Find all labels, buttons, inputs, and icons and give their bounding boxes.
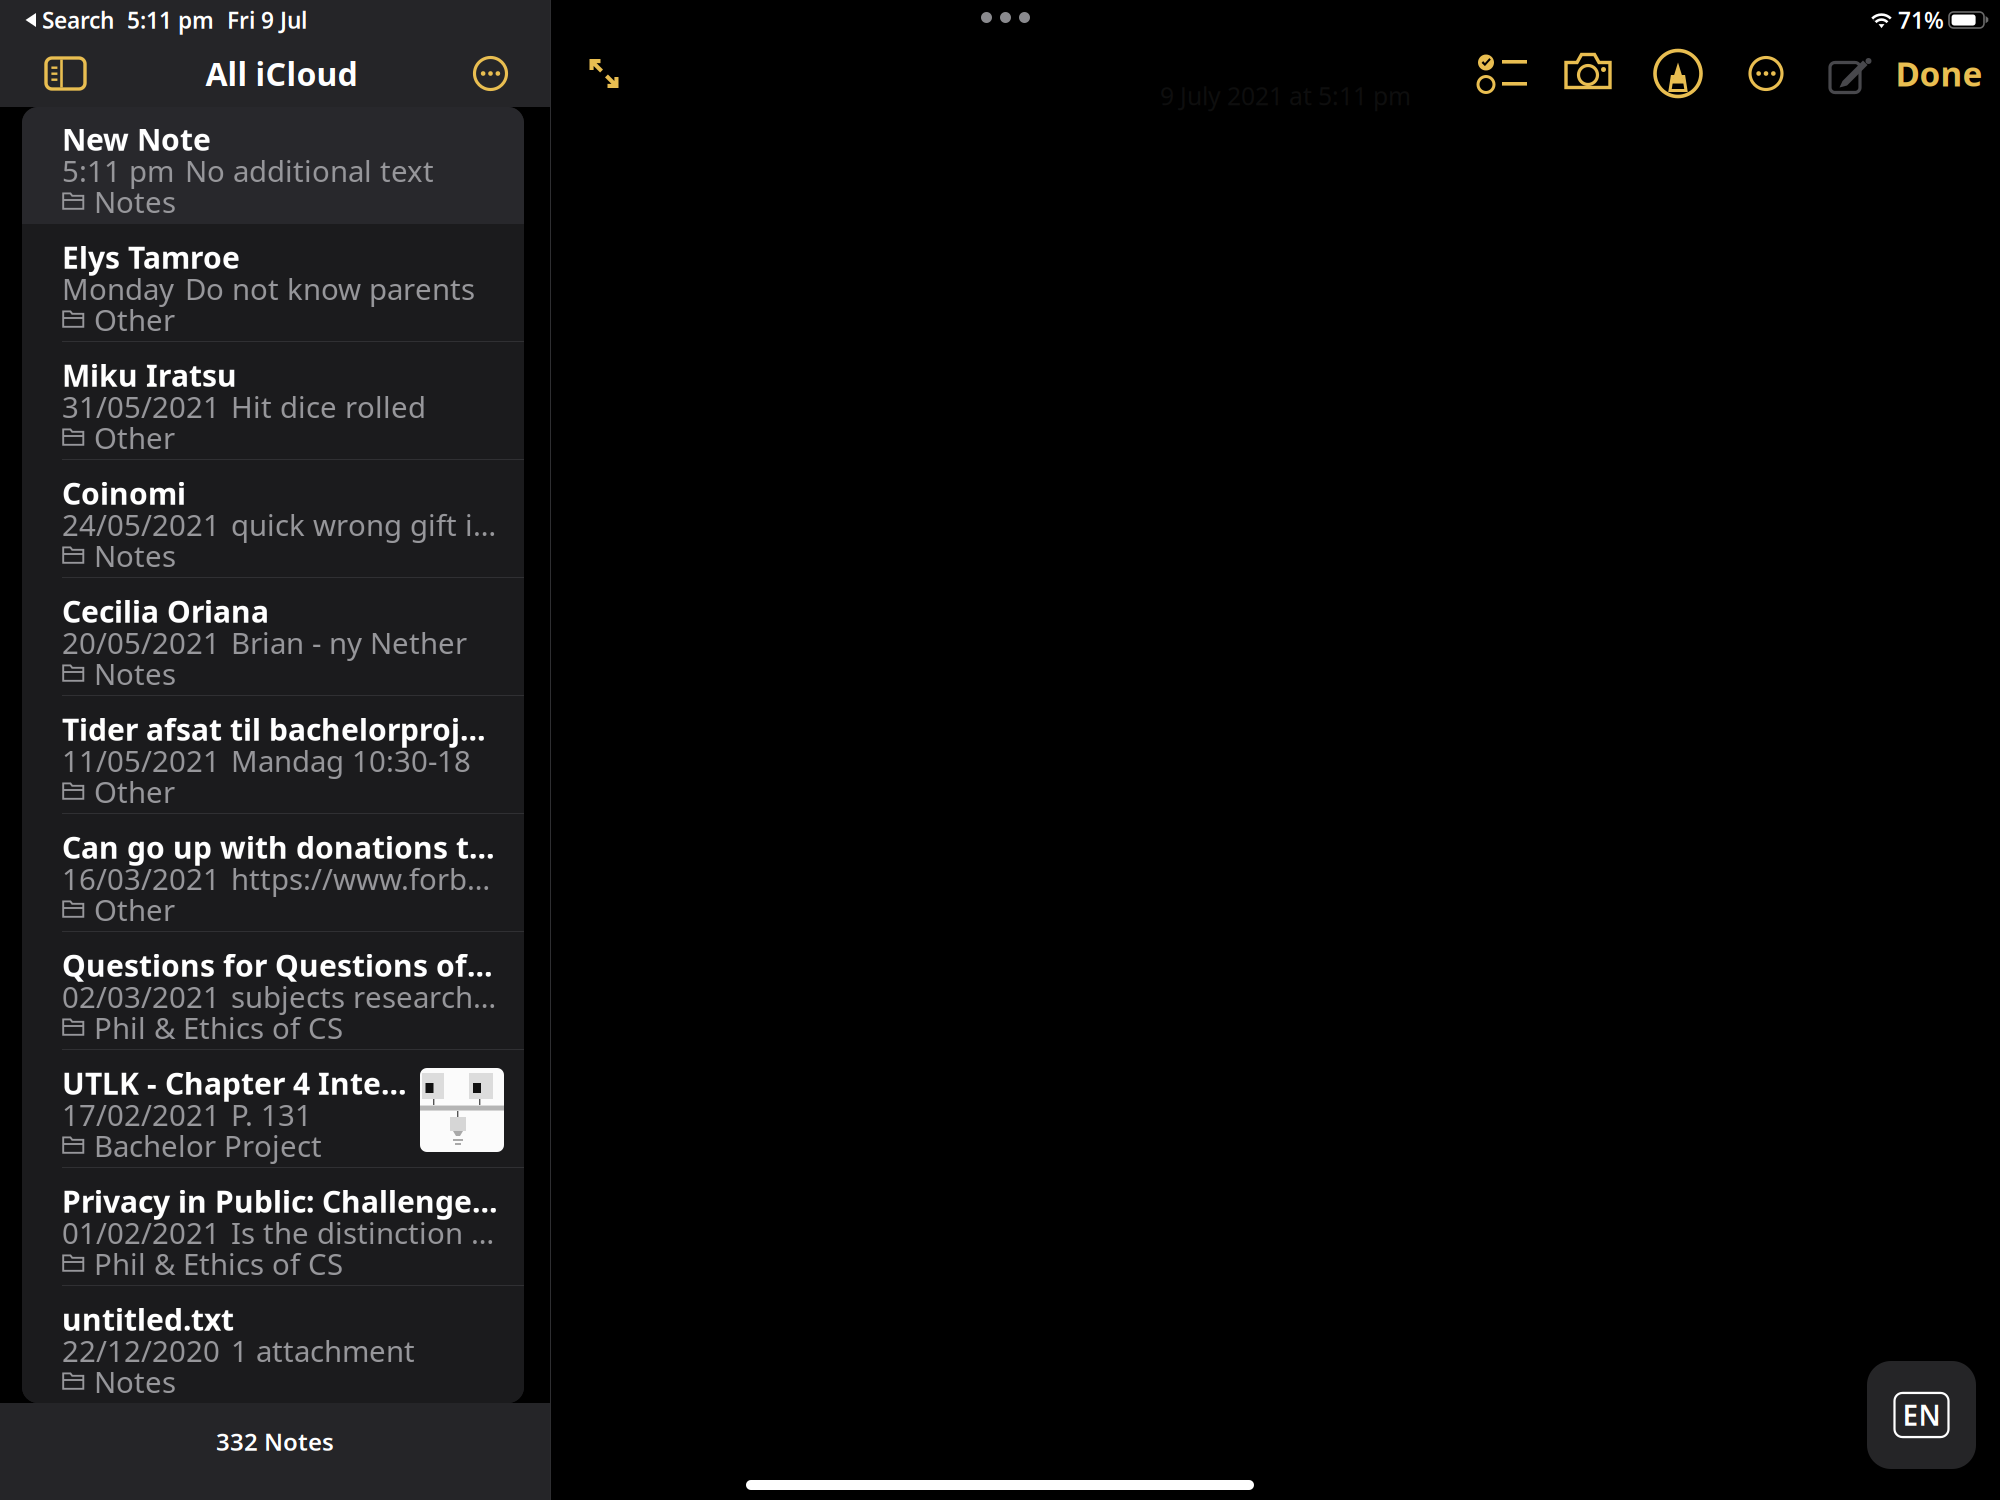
staticText: Other xyxy=(94,302,175,336)
staticText: 71% xyxy=(1898,5,1944,35)
button[interactable]: More xyxy=(460,40,521,107)
staticText: 20/05/2021 xyxy=(62,625,220,659)
staticText: Notes xyxy=(94,1364,176,1398)
button[interactable]: Tider afsat til bachelorprojekt xyxy=(22,696,524,814)
button[interactable]: Checklist xyxy=(1460,40,1546,107)
staticText: 24/05/2021 xyxy=(62,507,220,541)
staticText: Search xyxy=(42,5,114,35)
staticText: Tider afsat til bachelorprojekt xyxy=(62,712,498,746)
staticText: Hit dice rolled xyxy=(231,389,426,423)
staticText: 9 July 2021 at 5:11 pm xyxy=(1160,79,1411,113)
staticText: 332 Notes xyxy=(216,1425,334,1458)
staticText: Notes xyxy=(94,184,176,218)
button[interactable]: Miku Iratsu xyxy=(22,342,524,460)
staticText: EN xyxy=(1902,1396,1940,1434)
button[interactable]: Coinomi xyxy=(22,460,524,578)
staticText: 02/03/2021 xyxy=(62,979,220,1013)
staticText: https://www.forbes.com/sit… xyxy=(231,861,498,895)
staticText: Notes xyxy=(94,538,176,572)
staticText: Questions for Questions of Intern… xyxy=(62,948,498,982)
staticText: New Note xyxy=(62,122,211,156)
button[interactable]: Questions for Questions of Intern… xyxy=(22,932,524,1050)
staticText: untitled.txt xyxy=(62,1302,234,1336)
staticText: 11/05/2021 xyxy=(62,743,220,777)
staticText: UTLK - Chapter 4 Interru… xyxy=(62,1066,414,1100)
staticText: quick wrong gift inhale cora… xyxy=(231,507,498,541)
button[interactable]: Show Sidebar xyxy=(28,40,103,107)
staticText: 5:11 pm xyxy=(127,5,214,35)
button[interactable]: Markup xyxy=(1634,40,1722,107)
staticText: All iCloud xyxy=(205,52,357,95)
staticText: 01/02/2021 xyxy=(62,1215,220,1249)
staticText: 16/03/2021 xyxy=(62,861,220,895)
button[interactable]: Done xyxy=(1894,40,1984,107)
staticText: Phil & Ethics of CS xyxy=(94,1010,343,1044)
staticText: Fri 9 Jul xyxy=(227,5,307,35)
staticText: Other xyxy=(94,420,175,454)
staticText: Elys Tamroe xyxy=(62,240,240,274)
staticText: Monday xyxy=(62,271,174,305)
staticText: Brian - ny Nether xyxy=(231,625,467,659)
staticText: Cecilia Oriana xyxy=(62,594,269,628)
button[interactable]: Privacy in Public: Challenges of IT xyxy=(22,1168,524,1286)
staticText: Privacy in Public: Challenges of IT xyxy=(62,1184,498,1218)
staticText: P. 131 xyxy=(231,1097,312,1131)
staticText: Bachelor Project xyxy=(94,1128,322,1162)
staticText: 17/02/2021 xyxy=(62,1097,220,1131)
staticText: Notes xyxy=(94,656,176,690)
staticText: Is the distinction clear betw… xyxy=(231,1215,498,1249)
staticText: Miku Iratsu xyxy=(62,358,237,392)
button[interactable]: Expand xyxy=(560,40,648,107)
staticText: Other xyxy=(94,774,175,808)
staticText: subjects research model xyxy=(231,979,498,1013)
staticText: 22/12/2020 xyxy=(62,1333,220,1367)
staticText: Done xyxy=(1895,51,1982,96)
staticText: 5:11 pm xyxy=(62,153,174,187)
button[interactable]: Elys Tamroe xyxy=(22,224,524,342)
staticText: Can go up with donations to chari… xyxy=(62,830,498,864)
staticText: Coinomi xyxy=(62,476,186,510)
staticText: 31/05/2021 xyxy=(62,389,220,423)
button[interactable]: Cecilia Oriana xyxy=(22,578,524,696)
staticText: No additional text xyxy=(185,153,434,187)
button[interactable]: Compose xyxy=(1810,40,1894,107)
staticText: Do not know parents xyxy=(185,271,475,305)
button[interactable]: Keyboard language: English xyxy=(1867,1361,1976,1469)
button[interactable]: UTLK - Chapter 4 Interru… xyxy=(22,1050,524,1168)
button[interactable]: More xyxy=(1722,40,1810,107)
button[interactable]: New Note xyxy=(22,106,524,224)
button[interactable]: Can go up with donations to chari… xyxy=(22,814,524,932)
staticText: 1 attachment xyxy=(231,1333,415,1367)
button[interactable]: Camera xyxy=(1546,40,1634,107)
staticText: Other xyxy=(94,892,175,926)
staticText: Mandag 10:30-18 xyxy=(231,743,471,777)
staticText: Phil & Ethics of CS xyxy=(94,1246,343,1280)
button[interactable]: untitled.txt xyxy=(22,1286,524,1404)
